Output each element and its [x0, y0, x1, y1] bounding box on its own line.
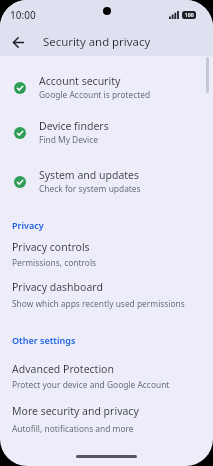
button[interactable]: Privacy controls: [0, 231, 213, 268]
staticText: Protect your device and Google Account: [12, 379, 170, 390]
staticText: Security and privacy: [43, 34, 151, 50]
button[interactable]: System and updates: [0, 158, 213, 205]
staticText: System and updates: [39, 168, 140, 182]
staticText: More security and privacy: [12, 404, 139, 418]
staticText: Find My Device: [39, 134, 98, 145]
staticText: Account security: [39, 74, 121, 88]
staticText: Show which apps recently used permission…: [12, 298, 185, 309]
staticText: Device finders: [39, 119, 109, 133]
button[interactable]: Privacy dashboard: [0, 268, 213, 309]
button[interactable]: Device finders: [0, 110, 213, 156]
button[interactable]: Account security: [0, 65, 213, 110]
staticText: 100: [185, 12, 194, 19]
staticText: Autofill, notifications and more: [12, 423, 134, 434]
staticText: Privacy: [12, 219, 44, 231]
button[interactable]: More security and privacy: [0, 390, 213, 434]
staticText: Check for system updates: [39, 183, 141, 194]
button[interactable]: [8, 32, 28, 52]
staticText: Privacy controls: [12, 240, 90, 254]
staticText: 10:00: [10, 8, 36, 22]
staticText: Advanced Protection: [12, 362, 114, 376]
staticText: Google Account is protected: [39, 89, 151, 100]
button[interactable]: Advanced Protection: [0, 346, 213, 390]
staticText: Privacy dashboard: [12, 280, 103, 294]
staticText: Other settings: [12, 334, 76, 346]
staticText: Permissions, controls: [12, 257, 97, 268]
